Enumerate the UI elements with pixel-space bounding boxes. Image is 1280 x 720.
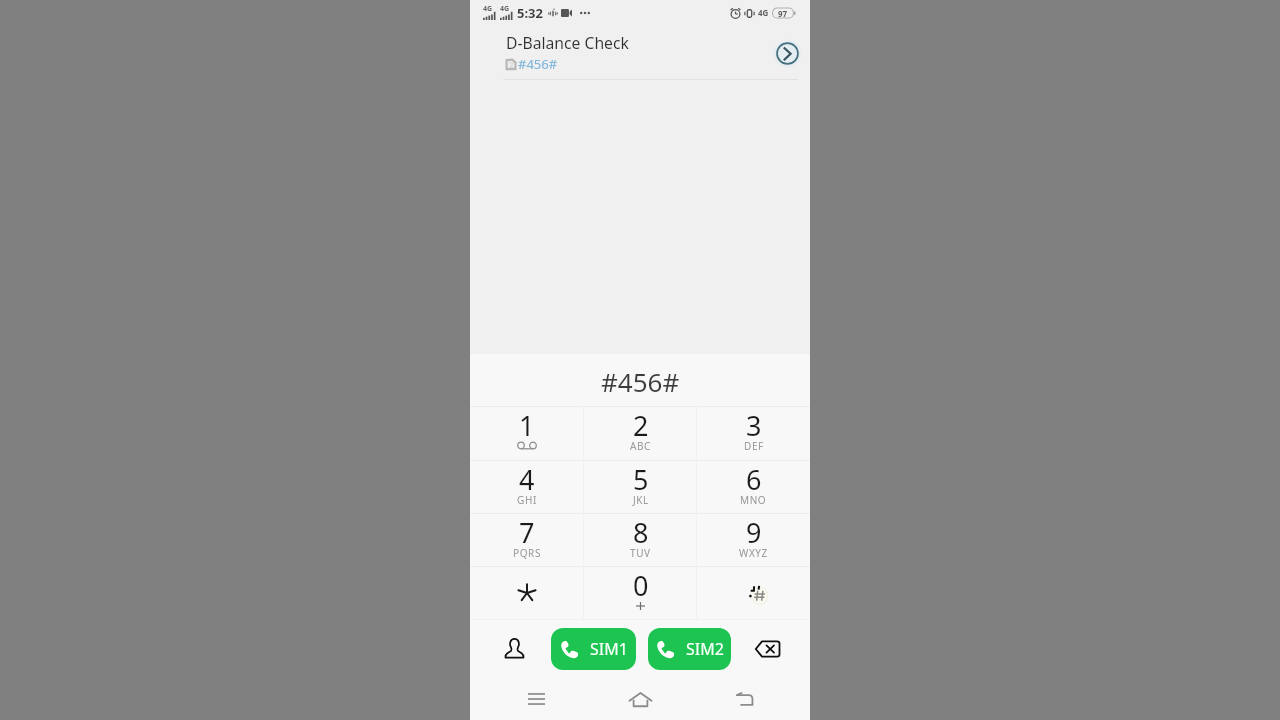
- button[interactable]: Backspace: [748, 630, 786, 668]
- staticText: 6: [746, 461, 762, 498]
- button[interactable]: Back: [724, 679, 764, 719]
- button[interactable]: 7: [470, 514, 584, 566]
- staticText: WXYZ: [739, 546, 768, 560]
- staticText: 4G: [758, 7, 769, 18]
- staticText: 5: [633, 461, 649, 498]
- button[interactable]: Contacts: [495, 629, 533, 667]
- staticText: 2: [509, 59, 514, 70]
- staticText: 4G: [500, 4, 510, 14]
- staticText: #456#: [601, 364, 680, 399]
- staticText: 2: [633, 407, 649, 444]
- button[interactable]: 8: [584, 514, 697, 566]
- staticText: MNO: [740, 493, 767, 507]
- staticText: SIM1: [590, 638, 628, 660]
- staticText: 4: [519, 461, 535, 498]
- button[interactable]: 2: [584, 407, 697, 460]
- button[interactable]: Star: [470, 567, 584, 619]
- staticText: 1: [519, 407, 535, 444]
- staticText: JKL: [633, 493, 649, 507]
- staticText: #456#: [518, 55, 558, 73]
- staticText: PQRS: [513, 546, 541, 560]
- staticText: D-Balance Check: [506, 32, 629, 53]
- button[interactable]: Pound: [697, 567, 810, 619]
- staticText: 9: [746, 514, 762, 551]
- button[interactable]: Run code: [771, 37, 803, 69]
- button[interactable]: Recent apps: [516, 679, 556, 719]
- staticText: 8: [633, 514, 649, 551]
- staticText: 97: [778, 8, 788, 19]
- button[interactable]: 9: [697, 514, 810, 566]
- staticText: 4G: [483, 4, 493, 14]
- staticText: SIM2: [686, 638, 724, 660]
- staticText: ABC: [630, 439, 652, 453]
- button[interactable]: 6: [697, 461, 810, 513]
- staticText: 3: [746, 407, 762, 444]
- staticText: GHI: [517, 493, 537, 507]
- button[interactable]: 0: [584, 567, 697, 619]
- button[interactable]: Home: [620, 679, 660, 719]
- button[interactable]: 3: [697, 407, 810, 460]
- staticText: 5:32: [517, 4, 543, 22]
- button[interactable]: D-Balance Check: [506, 26, 771, 79]
- staticText: 7: [519, 514, 535, 551]
- button[interactable]: 5: [584, 461, 697, 513]
- button[interactable]: 4: [470, 461, 584, 513]
- button[interactable]: SIM2: [648, 628, 731, 670]
- button[interactable]: 1: [470, 407, 584, 460]
- staticText: DEF: [744, 439, 764, 453]
- button[interactable]: SIM1: [551, 628, 636, 670]
- staticText: 0: [633, 567, 649, 604]
- staticText: TUV: [630, 546, 651, 560]
